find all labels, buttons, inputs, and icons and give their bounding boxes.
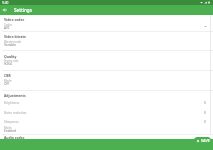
staticText: Codec xyxy=(4,23,13,27)
staticText: 0 xyxy=(204,120,206,124)
button[interactable]: Navigate up xyxy=(0,5,10,15)
staticText: AVC xyxy=(4,26,10,30)
button[interactable] xyxy=(0,108,213,117)
staticText: Enabled xyxy=(4,129,17,133)
staticText: 0 xyxy=(204,111,206,115)
button[interactable]: Save xyxy=(194,137,211,144)
button[interactable] xyxy=(0,70,213,90)
staticText: Noise reduction xyxy=(4,111,27,115)
staticText: 0 xyxy=(204,101,206,105)
staticText: Brightness xyxy=(4,101,20,105)
staticText: SAVE xyxy=(201,138,210,143)
staticText: Adjustments xyxy=(4,93,26,98)
staticText: Off xyxy=(4,82,9,86)
staticText: Video codec xyxy=(4,17,25,22)
staticText: Audio codec xyxy=(4,135,25,140)
staticText: Quality xyxy=(4,54,17,59)
button[interactable] xyxy=(0,31,213,50)
button[interactable] xyxy=(0,50,213,70)
staticText: CBR xyxy=(4,73,11,78)
staticText: Video bitrate xyxy=(4,34,26,39)
staticText: Sharpness xyxy=(4,120,19,124)
staticText: Settings xyxy=(14,7,32,13)
button[interactable] xyxy=(0,117,213,126)
staticText: Bitrate mode xyxy=(4,40,22,44)
staticText: 9:30 xyxy=(2,1,9,5)
button[interactable] xyxy=(0,125,213,133)
staticText: Variable xyxy=(4,43,17,47)
staticText: H264 xyxy=(4,62,12,66)
button[interactable] xyxy=(0,98,213,107)
button[interactable] xyxy=(0,14,213,31)
staticText: Mode xyxy=(4,79,12,83)
staticText: Frame rate xyxy=(4,59,19,63)
staticText: Mode xyxy=(4,126,12,130)
